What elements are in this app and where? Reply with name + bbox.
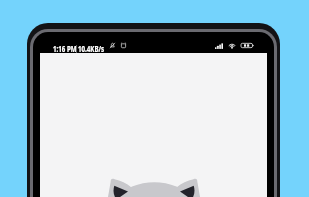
other: Wi-Fi [228,42,236,49]
staticText: 1:16 PM [53,42,77,53]
other: Silent mode [109,42,116,49]
other: Alarm set [120,42,127,49]
other: Signal strength [215,43,223,50]
staticText: | [75,42,78,53]
staticText: 10.4KB/s [78,42,105,53]
other: Battery [241,42,254,49]
